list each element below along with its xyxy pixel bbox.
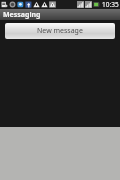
- staticText: 10:35: [102, 0, 119, 9]
- staticText: Messaging: [3, 10, 41, 20]
- staticText: New message: [37, 26, 83, 36]
- button[interactable]: New message: [5, 23, 115, 39]
